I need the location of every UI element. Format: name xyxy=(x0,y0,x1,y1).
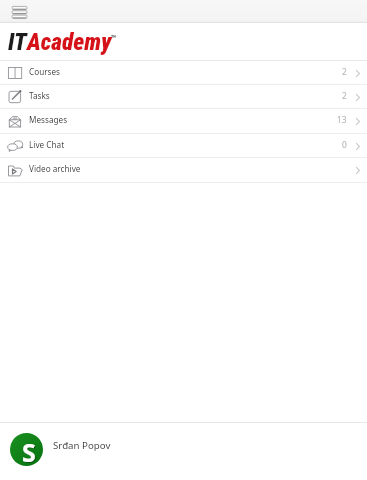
button[interactable]: Live Chat xyxy=(0,134,367,158)
staticText: S xyxy=(23,436,37,466)
staticText: IT xyxy=(8,28,27,56)
staticText: Video archive xyxy=(29,163,81,174)
button[interactable]: Messages xyxy=(0,109,367,134)
button[interactable]: Video archive xyxy=(0,158,367,183)
staticText: Srđan Popov xyxy=(53,439,111,452)
button[interactable]: Courses xyxy=(0,61,367,85)
staticText: Courses xyxy=(29,66,61,77)
button[interactable]: Tasks xyxy=(0,85,367,109)
staticText: Messages xyxy=(29,114,68,125)
staticText: Academy xyxy=(27,28,112,56)
staticText: Tasks xyxy=(29,90,50,101)
staticText: 2 xyxy=(342,90,347,101)
staticText: S xyxy=(22,435,36,466)
staticText: 2 xyxy=(342,66,347,77)
staticText: Live Chat xyxy=(29,139,65,150)
staticText: 0 xyxy=(342,139,347,150)
button[interactable]: Menu xyxy=(10,4,29,20)
button[interactable]: S xyxy=(0,422,367,480)
staticText: 13 xyxy=(337,114,347,125)
